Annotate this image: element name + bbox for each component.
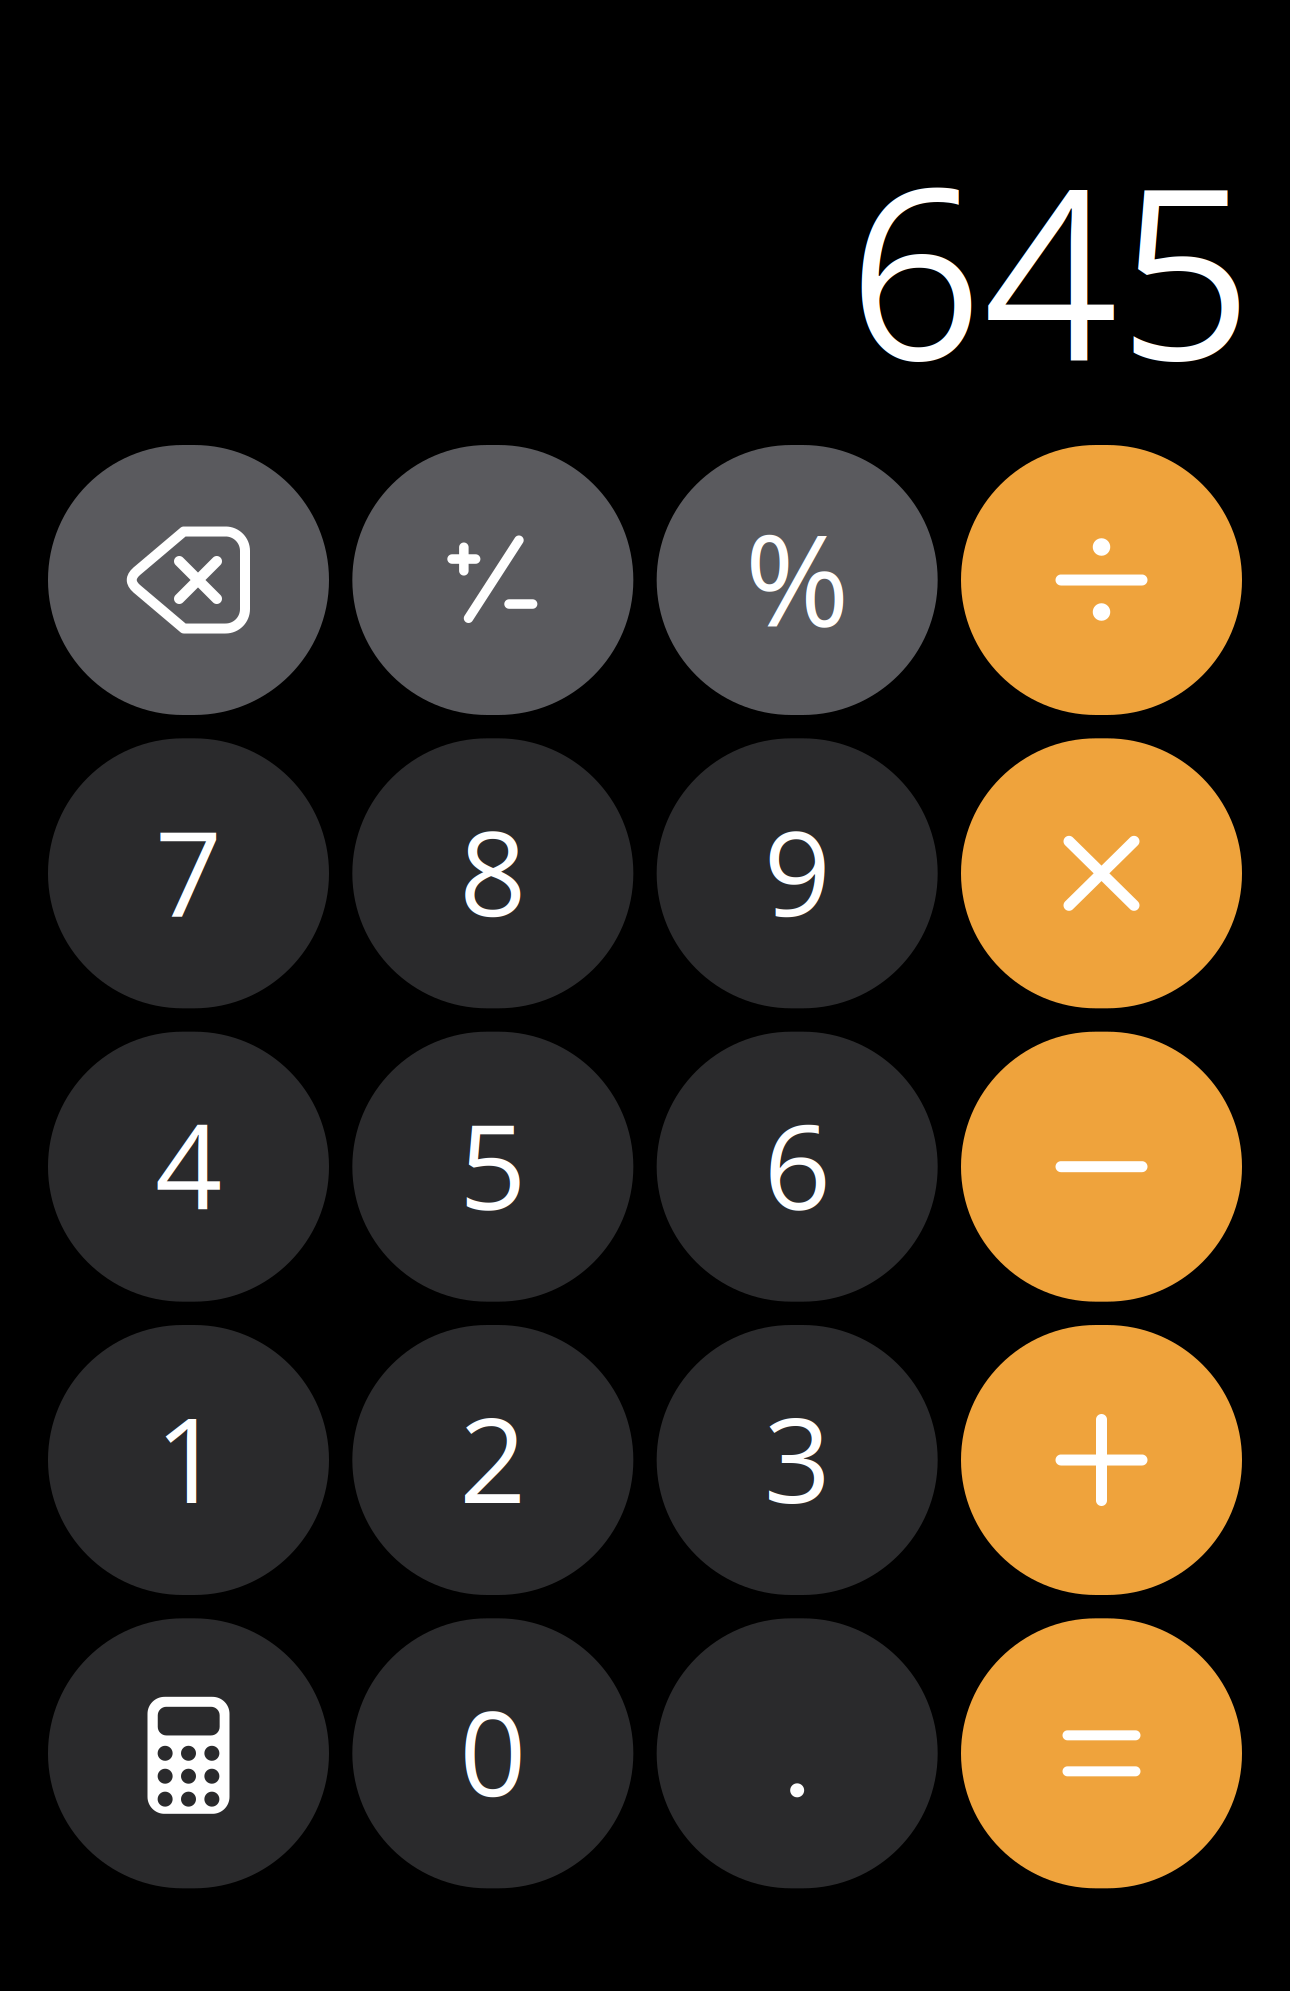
button[interactable]: 2 [352, 1325, 633, 1595]
staticText: 3 [764, 1378, 831, 1537]
button[interactable]: 5 [352, 1032, 633, 1302]
button[interactable]: 3 [657, 1325, 938, 1595]
button[interactable]: Plus minus [352, 445, 633, 715]
button[interactable]: Multiply [961, 738, 1242, 1008]
button[interactable]: 7 [48, 738, 329, 1008]
button[interactable]: Calculator [48, 1618, 329, 1888]
staticText: 0 [459, 1671, 526, 1831]
staticText: 9 [764, 791, 831, 951]
button[interactable]: Delete [48, 445, 329, 715]
button[interactable]: Decimal point [657, 1618, 938, 1888]
button[interactable]: 8 [352, 738, 633, 1008]
staticText: 8 [459, 791, 526, 951]
button[interactable]: 4 [48, 1032, 329, 1302]
button[interactable]: Divide [961, 445, 1242, 715]
button[interactable]: 6 [657, 1032, 938, 1302]
button[interactable]: 9 [657, 738, 938, 1008]
button[interactable]: Subtract [961, 1032, 1242, 1302]
button[interactable]: 0 [352, 1618, 633, 1888]
button[interactable]: % [657, 445, 938, 715]
staticText: 2 [459, 1378, 526, 1537]
staticText: % [745, 491, 850, 664]
button[interactable]: 1 [48, 1325, 329, 1595]
staticText: 7 [155, 791, 222, 951]
staticText: 1 [155, 1378, 222, 1537]
staticText: 645 [848, 108, 1253, 429]
staticText: 6 [764, 1084, 831, 1244]
staticText: 5 [459, 1084, 526, 1244]
button[interactable]: Add [961, 1325, 1242, 1595]
button[interactable]: Equals [961, 1618, 1242, 1888]
staticText: 4 [155, 1084, 222, 1244]
